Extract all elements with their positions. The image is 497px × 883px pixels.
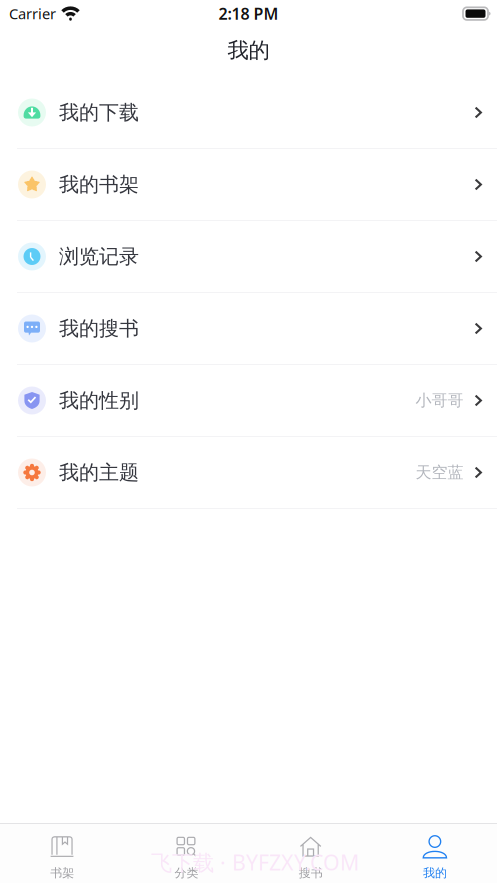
button[interactable]: 我的主题 (0, 437, 497, 509)
staticText: 我的 (227, 37, 269, 64)
button[interactable]: 我的性别 (0, 365, 497, 437)
staticText: 书架 (50, 866, 74, 880)
staticText: 2:18 PM (218, 3, 278, 24)
staticText: 我的主题 (59, 460, 139, 485)
staticText: 小哥哥 (415, 391, 463, 410)
button[interactable]: 我的 (373, 824, 497, 883)
button[interactable]: 搜书 (248, 824, 373, 883)
staticText: 我的性别 (59, 388, 139, 413)
button[interactable]: 我的搜书 (0, 293, 497, 365)
button[interactable]: 我的书架 (0, 149, 497, 221)
staticText: 我的搜书 (59, 316, 139, 341)
button[interactable]: 分类 (124, 824, 248, 883)
staticText: Carrier (9, 4, 56, 23)
staticText: 飞下载 · BYFZXY.COM (151, 848, 359, 876)
staticText: 浏览记录 (59, 244, 139, 269)
staticText: 我的书架 (59, 172, 139, 197)
button[interactable]: 书架 (0, 824, 124, 883)
staticText: 搜书 (299, 866, 323, 880)
staticText: 我的 (423, 866, 447, 880)
staticText: 分类 (174, 866, 198, 880)
button[interactable]: 我的下载 (0, 77, 497, 149)
staticText: 我的下载 (59, 100, 139, 125)
button[interactable]: 浏览记录 (0, 221, 497, 293)
staticText: 天空蓝 (415, 463, 463, 482)
